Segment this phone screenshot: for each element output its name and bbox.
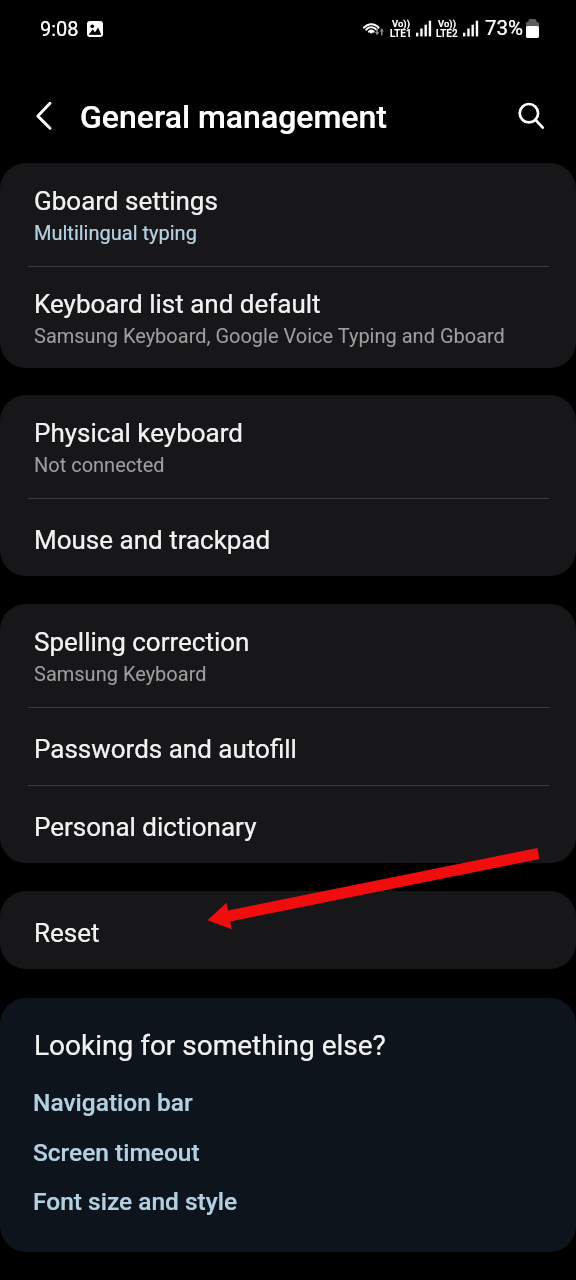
staticText: Mouse and trackpad: [34, 525, 271, 555]
button[interactable]: Search: [505, 90, 553, 138]
staticText: 9:08: [40, 17, 79, 40]
button[interactable]: [0, 163, 576, 266]
staticText: General management: [80, 98, 387, 136]
button[interactable]: Navigation bar: [24, 1079, 354, 1114]
staticText: Font size and style: [33, 1187, 238, 1216]
staticText: Passwords and autofill: [34, 734, 297, 764]
staticText: Keyboard list and default: [34, 289, 321, 319]
staticText: Vo)): [392, 18, 410, 29]
button[interactable]: [0, 266, 576, 368]
staticText: Not connected: [34, 453, 165, 476]
button[interactable]: [0, 604, 576, 707]
button[interactable]: [0, 395, 576, 498]
staticText: LTE1: [390, 28, 412, 40]
staticText: Gboard settings: [34, 186, 218, 216]
button[interactable]: [0, 891, 576, 969]
staticText: Looking for something else?: [34, 1029, 386, 1062]
staticText: Multilingual typing: [34, 221, 197, 244]
button[interactable]: Screen timeout: [24, 1129, 354, 1164]
button[interactable]: Back: [14, 90, 64, 140]
staticText: Physical keyboard: [34, 418, 243, 448]
staticText: Spelling correction: [34, 627, 250, 657]
staticText: Screen timeout: [33, 1138, 200, 1167]
staticText: Samsung Keyboard: [34, 662, 207, 685]
button[interactable]: Font size and style: [24, 1178, 354, 1213]
button[interactable]: [0, 707, 576, 785]
staticText: 73%: [485, 16, 524, 40]
staticText: Vo)): [438, 18, 456, 29]
staticText: Samsung Keyboard, Google Voice Typing an…: [34, 324, 505, 347]
staticText: Personal dictionary: [34, 812, 257, 842]
button[interactable]: [0, 498, 576, 576]
staticText: Reset: [34, 918, 100, 948]
staticText: Navigation bar: [33, 1088, 193, 1117]
staticText: LTE2: [436, 28, 458, 40]
button[interactable]: [0, 785, 576, 863]
